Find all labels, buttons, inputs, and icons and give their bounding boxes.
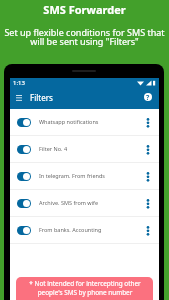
button[interactable]: Toggle filter: [10, 217, 159, 244]
button[interactable]: More options: [141, 223, 155, 237]
staticText: * Not intended for intercepting other pe…: [29, 279, 141, 297]
button[interactable]: More options: [141, 115, 155, 129]
button[interactable]: Toggle filter: [10, 190, 159, 217]
button[interactable]: More options: [141, 196, 155, 210]
staticText: 1:13: [13, 79, 25, 87]
button[interactable]: Toggle filter: [17, 145, 31, 154]
button[interactable]: Help: [141, 90, 155, 104]
staticText: From banks. Accounting: [39, 226, 102, 233]
staticText: Filter No. 4: [39, 145, 68, 152]
staticText: Archive. SMS from wife: [39, 199, 99, 206]
staticText: Whatsapp notifications: [39, 118, 99, 125]
staticText: In telegram. From friends: [39, 172, 105, 179]
button[interactable]: Toggle filter: [17, 172, 31, 181]
staticText: SMS Forwarder: [43, 2, 126, 17]
staticText: Set up flexible conditions for SMS that …: [4, 26, 165, 48]
button[interactable]: More options: [141, 142, 155, 156]
button[interactable]: Toggle filter: [17, 118, 31, 127]
button[interactable]: Toggle filter: [17, 226, 31, 235]
button[interactable]: Toggle filter: [10, 136, 159, 163]
button[interactable]: Toggle filter: [10, 163, 159, 190]
button[interactable]: Toggle filter: [17, 199, 31, 208]
staticText: Filters: [30, 92, 53, 103]
button[interactable]: Open navigation menu: [12, 92, 26, 106]
button[interactable]: Toggle filter: [10, 109, 159, 136]
button[interactable]: More options: [141, 169, 155, 183]
staticText: ?: [146, 93, 150, 101]
